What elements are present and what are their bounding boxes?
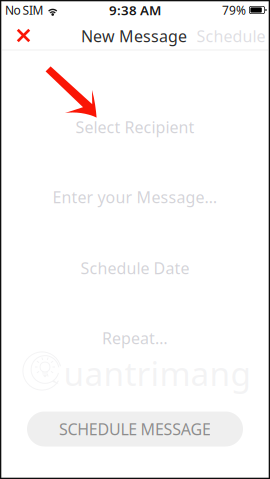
staticText: Enter your Message… <box>52 186 217 208</box>
staticText: uantrimang <box>63 351 251 395</box>
staticText: Repeat… <box>102 327 168 349</box>
button[interactable]: Schedule <box>196 21 266 51</box>
staticText: No SIM <box>5 2 43 18</box>
staticText: Schedule <box>196 25 265 47</box>
button[interactable]: SCHEDULE MESSAGE <box>27 411 243 446</box>
staticText: Schedule Date <box>80 257 189 279</box>
button[interactable]: Enter your Message… <box>10 175 260 219</box>
button[interactable]: Repeat… <box>10 316 260 360</box>
staticText: New Message <box>81 25 187 47</box>
button[interactable]: Close <box>6 20 40 50</box>
button[interactable]: Select Recipient <box>10 105 260 149</box>
staticText: 9:38 AM <box>109 1 161 19</box>
staticText: SCHEDULE MESSAGE <box>59 418 211 440</box>
button[interactable]: Schedule Date <box>10 246 260 290</box>
staticText: Select Recipient <box>75 116 194 138</box>
staticText: 79% <box>222 2 246 18</box>
